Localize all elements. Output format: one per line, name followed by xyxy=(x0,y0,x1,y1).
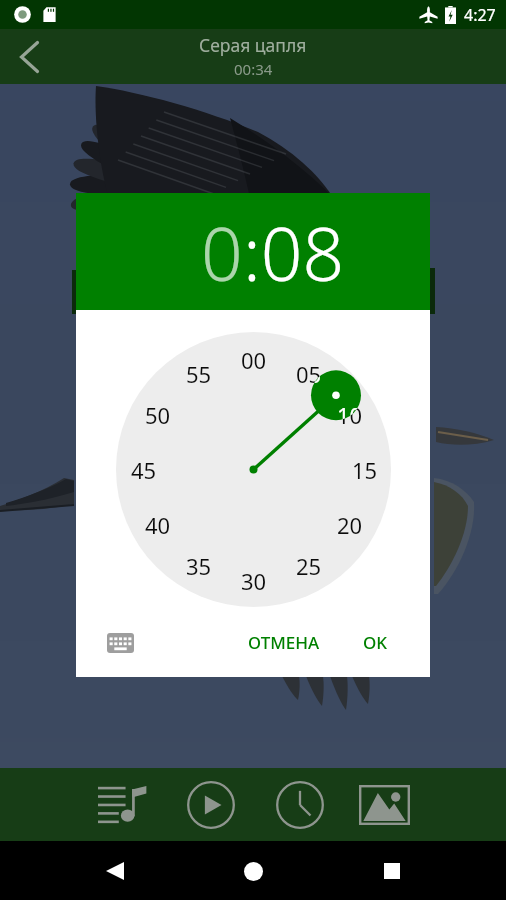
staticText: 25 xyxy=(296,551,322,581)
staticText: 10 xyxy=(337,400,363,430)
staticText: ОТМЕНА xyxy=(248,631,320,654)
staticText: Серая цапля xyxy=(199,33,307,57)
button[interactable]: OK xyxy=(355,621,396,664)
staticText: 30 xyxy=(241,566,267,596)
staticText: 20 xyxy=(337,510,363,540)
staticText: 15 xyxy=(352,455,378,485)
staticText: 05 xyxy=(296,359,322,389)
staticText: 00 xyxy=(241,345,267,375)
button[interactable]: Timer xyxy=(270,772,330,837)
staticText: 00:34 xyxy=(234,59,273,79)
staticText: 35 xyxy=(186,551,212,581)
button[interactable]: Recents xyxy=(368,847,416,895)
button[interactable]: Back xyxy=(91,847,139,895)
staticText: 50 xyxy=(145,400,171,430)
staticText: 45 xyxy=(131,455,157,485)
staticText: 10 xyxy=(337,400,363,430)
button[interactable]: Gallery xyxy=(354,772,414,837)
staticText: :08 xyxy=(243,203,345,302)
button[interactable]: ОТМЕНА xyxy=(240,621,328,664)
staticText: OK xyxy=(363,631,388,654)
button[interactable]: Play xyxy=(181,772,241,837)
button[interactable]: Playlist xyxy=(94,772,154,837)
staticText: 45 xyxy=(131,455,157,485)
staticText: 40 xyxy=(145,510,171,540)
staticText: 55 xyxy=(186,359,212,389)
staticText: 25 xyxy=(296,551,322,581)
staticText: 30 xyxy=(241,566,267,596)
staticText: 05 xyxy=(296,359,322,389)
button[interactable]: Switch to keyboard input xyxy=(100,623,140,663)
staticText: 35 xyxy=(186,551,212,581)
button[interactable]: Back xyxy=(4,32,54,82)
button[interactable]: Home xyxy=(229,847,277,895)
staticText: 4:27 xyxy=(464,4,496,26)
staticText: 50 xyxy=(145,400,171,430)
staticText: 55 xyxy=(186,359,212,389)
staticText: 00 xyxy=(241,345,267,375)
staticText: 15 xyxy=(352,455,378,485)
staticText: 40 xyxy=(145,510,171,540)
staticText: 20 xyxy=(337,510,363,540)
staticText: 0 xyxy=(201,203,243,302)
